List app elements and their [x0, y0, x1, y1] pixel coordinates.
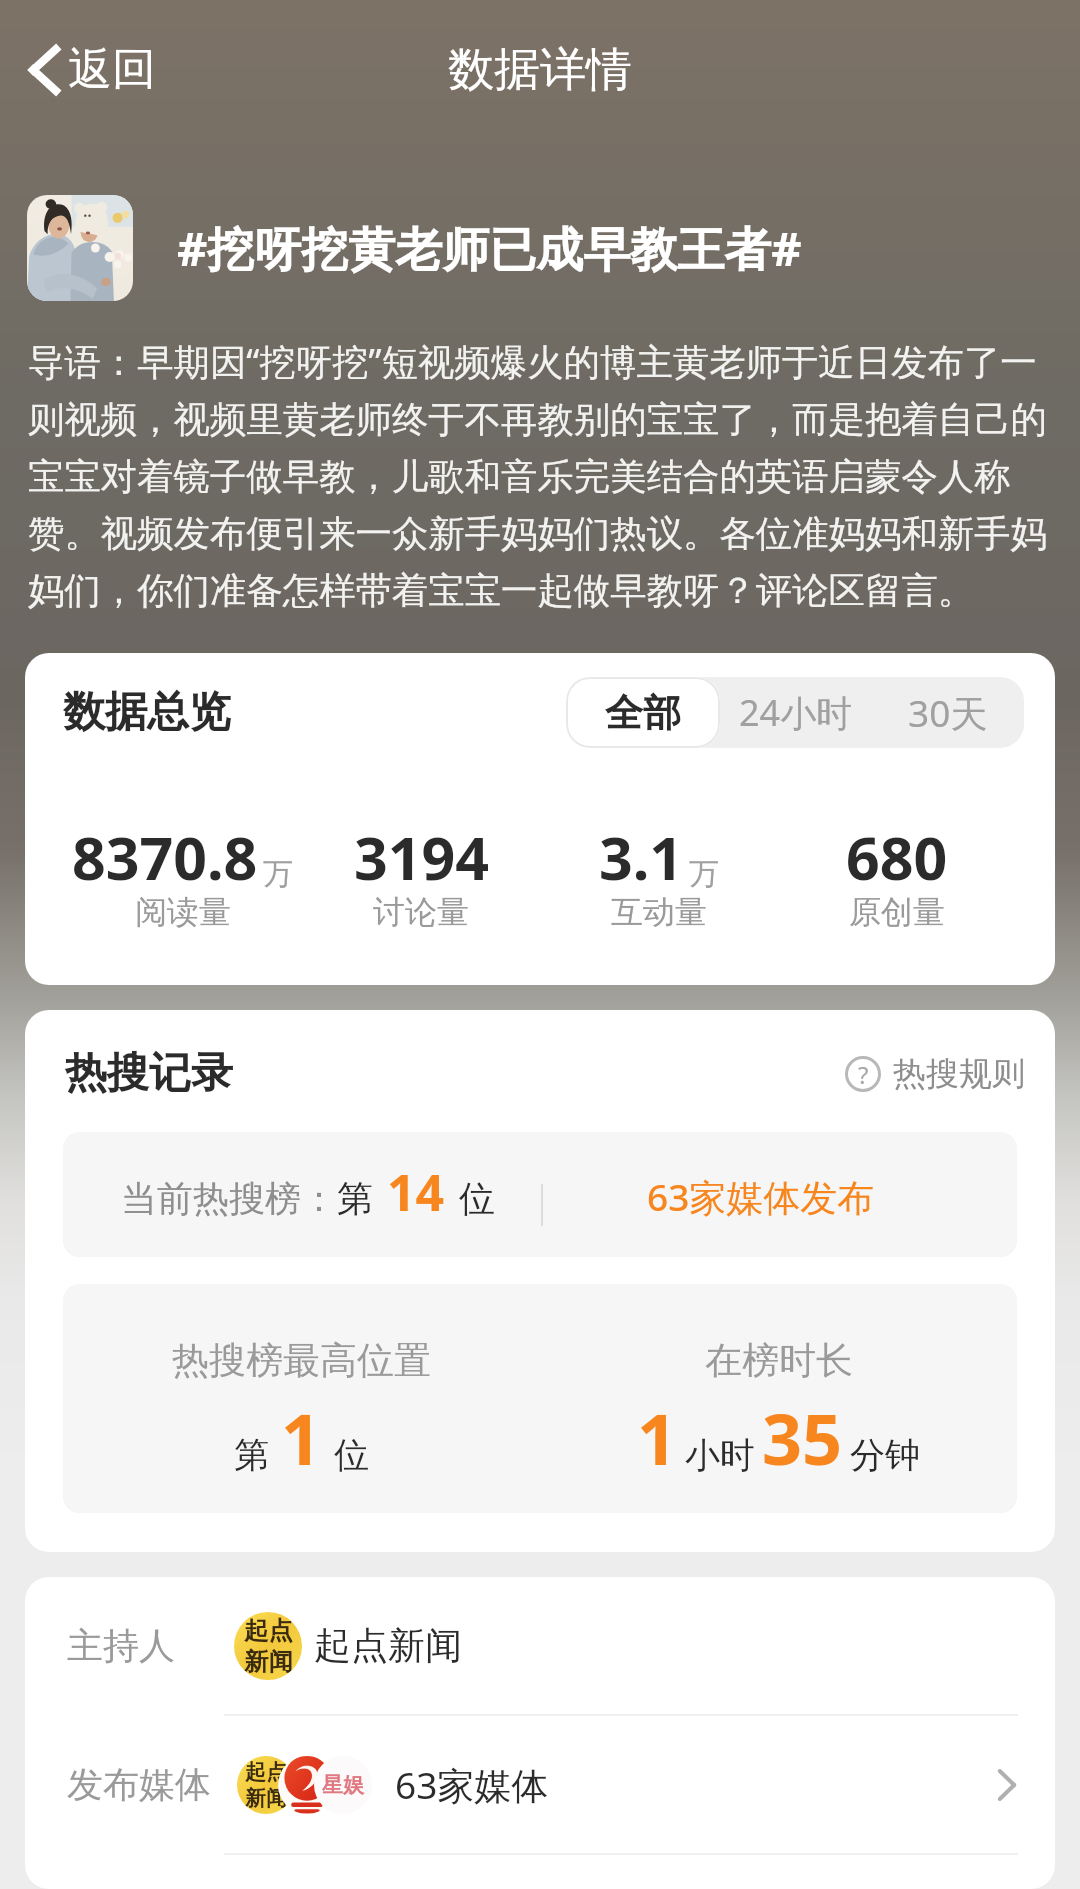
- staticText: 起点新闻: [314, 1622, 462, 1669]
- staticText: 3194: [354, 817, 489, 897]
- staticText: 热搜记录: [65, 1047, 233, 1100]
- staticText: 1: [637, 1390, 678, 1485]
- staticText: 返回: [68, 42, 156, 97]
- staticText: 3.1: [599, 817, 684, 897]
- staticText: 新闻: [244, 1646, 293, 1677]
- staticText: 发布媒体: [67, 1762, 211, 1807]
- staticText: 位: [334, 1433, 369, 1477]
- staticText: #挖呀挖黄老师已成早教王者#: [177, 216, 802, 280]
- staticText: 63家媒体发布: [647, 1171, 875, 1222]
- staticText: 万: [263, 855, 293, 893]
- staticText: 63家媒体: [395, 1759, 549, 1810]
- staticText: 第: [234, 1433, 269, 1477]
- staticText: 8370.8: [72, 817, 258, 897]
- staticText: 35: [762, 1390, 843, 1485]
- staticText: 互动量: [611, 892, 707, 932]
- staticText: 热搜规则: [893, 1053, 1025, 1095]
- button[interactable]: 24小时: [720, 677, 872, 748]
- staticText: ?: [858, 1058, 869, 1091]
- staticText: 当前热搜榜：: [121, 1176, 337, 1221]
- button[interactable]: 主持人: [25, 1577, 1055, 1714]
- button[interactable]: 全部: [566, 677, 720, 748]
- staticText: 主持人: [67, 1623, 175, 1668]
- staticText: 24小时: [739, 688, 853, 737]
- staticText: 讨论量: [373, 892, 469, 932]
- button[interactable]: ?: [845, 1053, 1025, 1095]
- staticText: 30天: [908, 687, 988, 738]
- staticText: 阅读量: [135, 892, 231, 932]
- staticText: 第: [337, 1176, 373, 1221]
- button[interactable]: 发布媒体: [25, 1716, 1055, 1853]
- staticText: 万: [689, 855, 719, 893]
- button[interactable]: Back: [22, 36, 162, 103]
- staticText: 数据总览: [63, 686, 231, 739]
- staticText: 起点: [245, 1759, 287, 1785]
- staticText: 小时: [685, 1433, 755, 1477]
- staticText: 680: [846, 817, 948, 897]
- staticText: 14: [387, 1158, 445, 1226]
- button[interactable]: 30天: [872, 677, 1024, 748]
- staticText: 导语：早期因“挖呀挖”短视频爆火的博主黄老师于近日发布了一则视频，视频里黄老师终…: [28, 336, 1062, 613]
- staticText: 全部: [605, 689, 681, 737]
- staticText: 位: [459, 1176, 495, 1221]
- staticText: 新闻: [245, 1785, 287, 1811]
- staticText: 分钟: [850, 1433, 920, 1477]
- staticText: 原创量: [849, 892, 945, 932]
- staticText: 星娱: [322, 1772, 364, 1798]
- staticText: 起点: [244, 1615, 293, 1646]
- staticText: 在榜时长: [705, 1337, 853, 1384]
- staticText: 数据详情: [448, 41, 632, 99]
- staticText: 1: [281, 1390, 322, 1485]
- staticText: 热搜榜最高位置: [172, 1337, 431, 1384]
